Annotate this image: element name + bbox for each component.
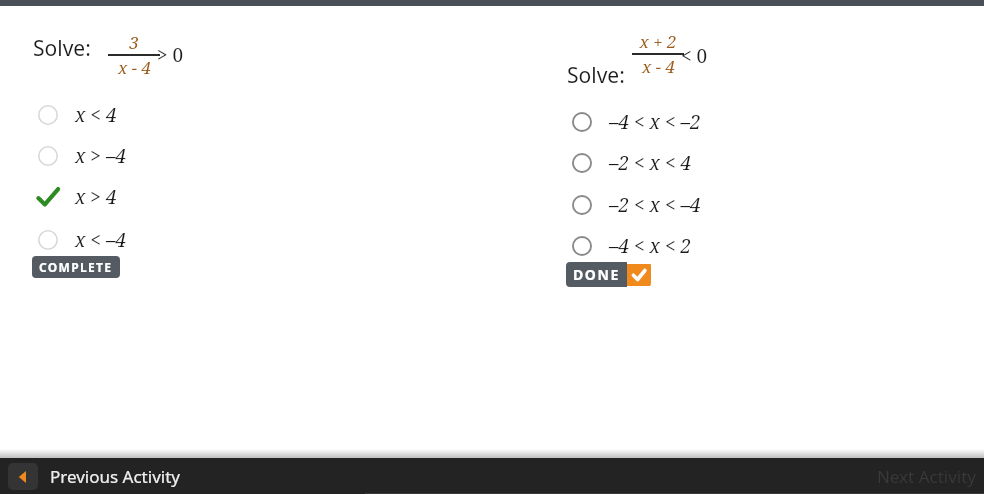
staticText: x − 4 <box>118 56 151 79</box>
staticText: –4 < x < –2 <box>609 109 701 135</box>
staticText: DONE <box>573 265 620 284</box>
button[interactable]: DONE <box>566 262 651 287</box>
button[interactable]: –4 < x < –2 <box>567 106 787 138</box>
staticText: x > –4 <box>75 143 126 169</box>
button[interactable]: –4 < x < 2 <box>567 230 787 262</box>
button[interactable]: –2 < x < 4 <box>567 147 787 179</box>
staticText: x < –4 <box>75 227 126 253</box>
staticText: < 0 <box>681 43 708 69</box>
button[interactable]: x < –4 <box>33 224 253 256</box>
button[interactable]: Previous Activity <box>0 463 394 490</box>
button[interactable]: COMPLETE <box>32 256 120 278</box>
staticText: Solve: <box>33 34 91 63</box>
staticText: Previous Activity <box>50 465 180 488</box>
staticText: –2 < x < –4 <box>609 192 701 218</box>
staticText: –2 < x < 4 <box>609 150 692 176</box>
staticText: x > 4 <box>75 184 117 210</box>
staticText: x − 4 <box>642 55 675 78</box>
staticText: COMPLETE <box>39 259 113 275</box>
staticText: 3 <box>129 31 139 54</box>
button[interactable]: Next Activity <box>876 465 984 488</box>
other: Completed <box>627 264 651 286</box>
staticText: Next Activity <box>876 465 976 488</box>
staticText: x + 2 <box>639 30 677 53</box>
staticText: –4 < x < 2 <box>609 233 692 259</box>
button[interactable]: x > –4 <box>33 140 253 172</box>
button[interactable]: x < 4 <box>33 99 253 131</box>
button[interactable]: x > 4 <box>33 181 253 213</box>
staticText: x < 4 <box>75 102 117 128</box>
staticText: Solve: <box>567 61 625 90</box>
button[interactable]: –2 < x < –4 <box>567 189 787 221</box>
staticText: > 0 <box>157 42 184 68</box>
